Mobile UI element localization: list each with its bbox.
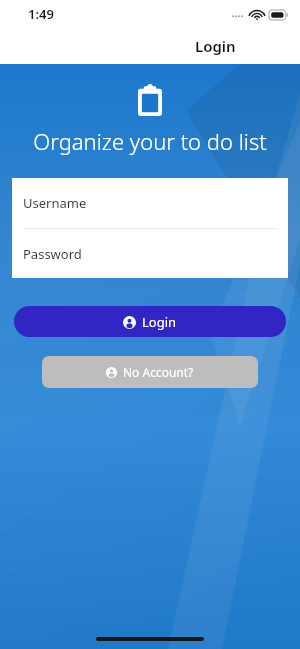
staticText: No Account? (123, 364, 194, 380)
staticText: 1:49 (28, 5, 54, 23)
button[interactable]: Password (12, 229, 288, 278)
staticText: Login (195, 36, 236, 56)
staticText: Organize your to do list (33, 126, 267, 156)
button[interactable]: No Account? (42, 356, 258, 388)
button[interactable]: Username (12, 178, 288, 228)
button[interactable]: Login (14, 306, 286, 337)
staticText: Login (142, 313, 177, 331)
staticText: Username (23, 194, 87, 212)
staticText: Password (23, 245, 82, 263)
